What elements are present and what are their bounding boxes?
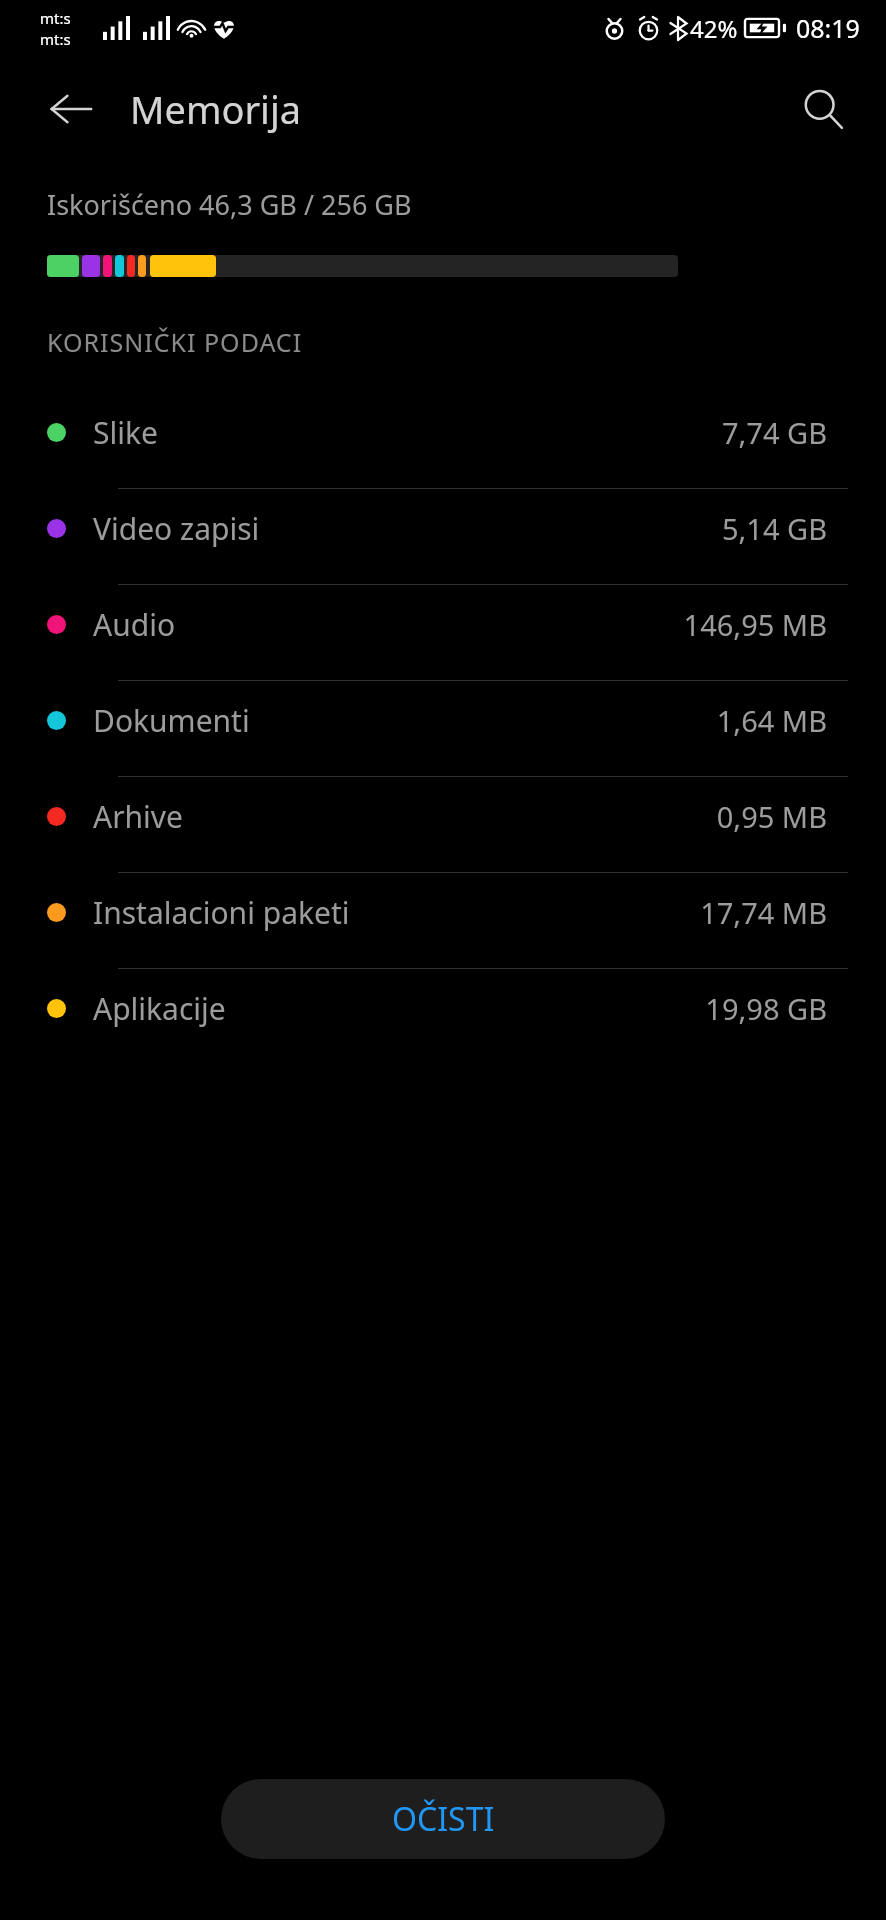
staticText: 19,98 GB (705, 989, 827, 1028)
button[interactable]: Search (788, 74, 858, 144)
staticText: mt:s (40, 29, 71, 49)
button[interactable]: Dokumenti (0, 681, 886, 777)
button[interactable]: Audio (0, 585, 886, 681)
button[interactable]: Slike (0, 393, 886, 489)
staticText: 17,74 MB (700, 893, 827, 932)
button[interactable]: Back (40, 78, 102, 140)
staticText: Instalacioni paketi (93, 892, 350, 933)
staticText: Aplikacije (93, 988, 226, 1029)
button[interactable]: Video zapisi (0, 489, 886, 585)
staticText: 146,95 MB (683, 605, 827, 644)
staticText: Audio (93, 604, 176, 645)
staticText: Memorija (130, 83, 302, 135)
staticText: Video zapisi (93, 508, 260, 549)
staticText: Dokumenti (93, 700, 250, 741)
button[interactable]: OČISTI (221, 1779, 665, 1859)
staticText: Arhive (93, 796, 183, 837)
staticText: Iskorišćeno 46,3 GB / 256 GB (47, 186, 412, 223)
staticText: 42% (690, 12, 738, 45)
staticText: 1,64 MB (716, 701, 827, 740)
button[interactable]: Instalacioni paketi (0, 873, 886, 969)
staticText: 7,74 GB (721, 413, 827, 452)
staticText: 08:19 (796, 11, 860, 45)
staticText: 0,95 MB (716, 797, 827, 836)
staticText: 5,14 GB (721, 509, 827, 548)
staticText: Slike (93, 412, 158, 453)
staticText: mt:s (40, 8, 71, 28)
button[interactable]: Arhive (0, 777, 886, 873)
staticText: KORISNIČKI PODACI (47, 325, 303, 359)
button[interactable]: Aplikacije (0, 969, 886, 1065)
staticText: OČISTI (392, 1797, 495, 1841)
